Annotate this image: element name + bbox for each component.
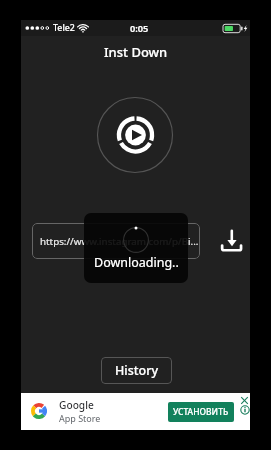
button[interactable]: https://www.instagram.com/p/Bi... [32, 223, 200, 259]
button[interactable]: Google [21, 393, 250, 430]
staticText: History [115, 362, 159, 379]
staticText: https://www.instagram.com/p/Bi... [40, 235, 199, 248]
button[interactable]: History [101, 357, 172, 384]
staticText: Tele2 [53, 22, 75, 34]
staticText: App Store [59, 412, 101, 424]
button[interactable]: УСТАНОВИТЬ [168, 402, 234, 422]
staticText: Inst Down [104, 43, 168, 61]
staticText: Google [59, 398, 94, 412]
button[interactable]: Ad info [240, 405, 250, 415]
button[interactable]: Play [97, 97, 173, 173]
staticText: Downloading.. [94, 254, 179, 271]
button[interactable]: Close ad [240, 396, 249, 405]
staticText: 0:05 [130, 22, 149, 35]
staticText: УСТАНОВИТЬ [173, 406, 229, 418]
button[interactable]: Download [218, 228, 244, 254]
